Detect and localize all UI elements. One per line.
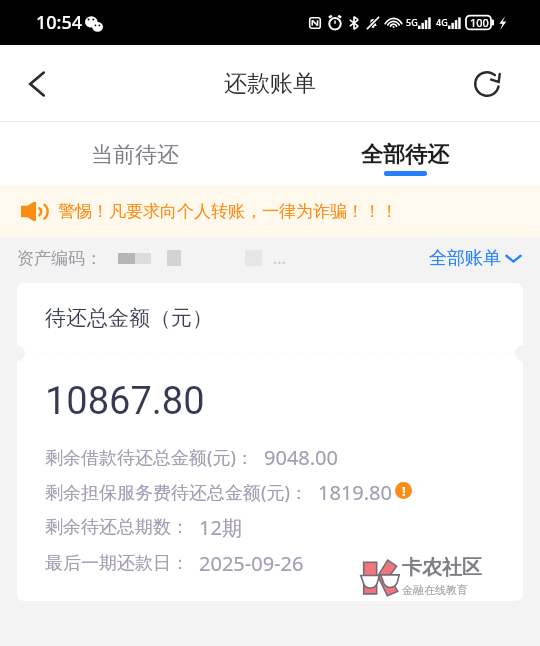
staticText: 资产编码： [17, 248, 102, 269]
staticText: 9048.00 [264, 444, 338, 471]
staticText: 2025-09-26 [199, 550, 304, 577]
button[interactable]: 当前待还 [0, 122, 270, 185]
staticText: 还款账单 [224, 69, 316, 98]
staticText: 12期 [199, 514, 242, 541]
button[interactable]: Refresh [462, 59, 512, 109]
staticText: 剩余待还总期数： [45, 516, 189, 539]
staticText: 最后一期还款日： [45, 552, 189, 575]
staticText: 10:54 [36, 10, 83, 35]
staticText: 5G [406, 16, 418, 28]
staticText: 全部待还 [361, 141, 449, 169]
button[interactable]: 全部账单 [429, 247, 522, 270]
staticText: 全部账单 [429, 247, 501, 270]
staticText: 1819.80 [318, 479, 392, 506]
staticText: ... [273, 247, 286, 269]
button[interactable]: Back [9, 56, 65, 112]
staticText: 剩余担保服务费待还总金额(元)： [45, 480, 308, 505]
button[interactable]: 全部待还 [270, 122, 540, 185]
staticText: ! [402, 482, 406, 499]
button[interactable]: Info [395, 482, 412, 499]
staticText: 剩余借款待还总金额(元)： [45, 445, 254, 470]
staticText: 金融在线教育 [402, 583, 468, 597]
staticText: 警惕！凡要求向个人转账，一律为诈骗！！！ [58, 201, 398, 222]
staticText: 当前待还 [91, 141, 179, 169]
staticText: 待还总金额（元） [45, 305, 213, 331]
staticText: 4G [436, 16, 448, 28]
staticText: 10867.80 [45, 379, 205, 424]
staticText: 100 [470, 15, 489, 30]
staticText: 卡农社区 [402, 555, 482, 580]
